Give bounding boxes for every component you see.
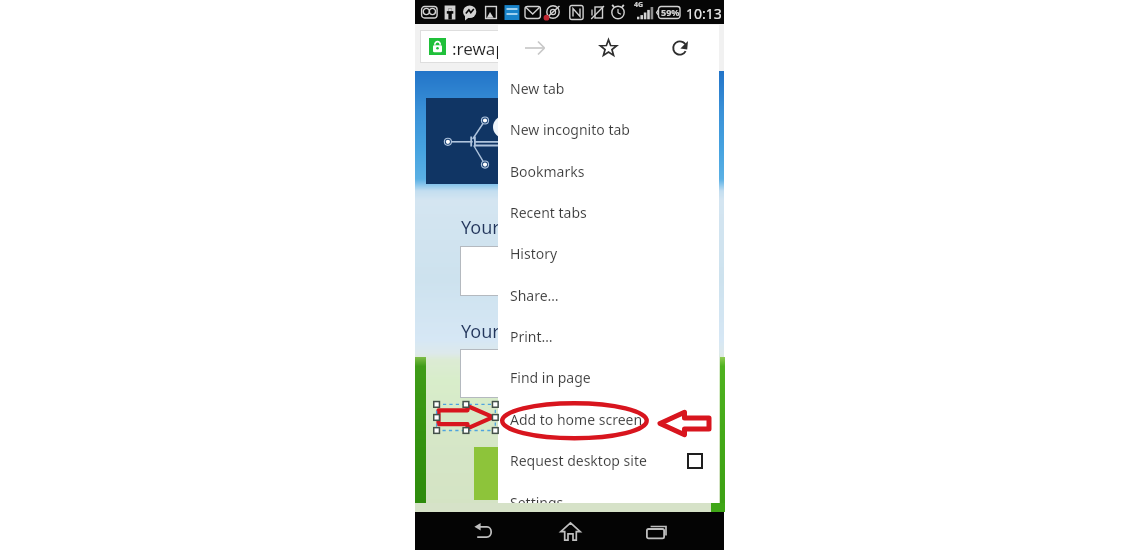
- button[interactable]: Settings: [498, 482, 719, 503]
- button[interactable]: Recents: [628, 512, 684, 550]
- staticText: Settings: [510, 493, 564, 503]
- staticText: New incognito tab: [510, 120, 630, 139]
- staticText: 59%: [661, 6, 680, 18]
- staticText: New tab: [510, 79, 565, 98]
- button[interactable]: Recent tabs: [498, 192, 719, 233]
- button[interactable]: Forward: [498, 25, 572, 70]
- button[interactable]: Add to home screen: [498, 399, 719, 440]
- button[interactable]: :rewap: [420, 30, 719, 63]
- button[interactable]: New incognito tab: [498, 109, 719, 150]
- button[interactable]: Home: [542, 512, 598, 550]
- staticText: 4G: [634, 0, 644, 10]
- button[interactable]: History: [498, 233, 719, 274]
- staticText: Your: [461, 215, 500, 240]
- button[interactable]: Bookmark: [572, 25, 645, 70]
- button[interactable]: New tab: [498, 68, 719, 109]
- staticText: 10:13: [686, 4, 722, 23]
- staticText: Print…: [510, 327, 553, 346]
- button[interactable]: Request desktop site: [498, 440, 719, 481]
- staticText: :rewap: [452, 37, 506, 60]
- staticText: Bookmarks: [510, 162, 585, 181]
- staticText: Add to home screen: [510, 410, 643, 429]
- staticText: Recent tabs: [510, 203, 587, 222]
- staticText: Find in page: [510, 368, 591, 387]
- button[interactable]: Bookmarks: [498, 151, 719, 192]
- staticText: Request desktop site: [510, 451, 687, 470]
- button[interactable]: Reload: [645, 25, 717, 70]
- button[interactable]: Back: [455, 512, 511, 550]
- button[interactable]: Print…: [498, 316, 719, 357]
- button[interactable]: Share…: [498, 275, 719, 316]
- staticText: Share…: [510, 286, 559, 305]
- staticText: Your: [461, 319, 500, 344]
- button[interactable]: Find in page: [498, 357, 719, 398]
- staticText: History: [510, 244, 558, 263]
